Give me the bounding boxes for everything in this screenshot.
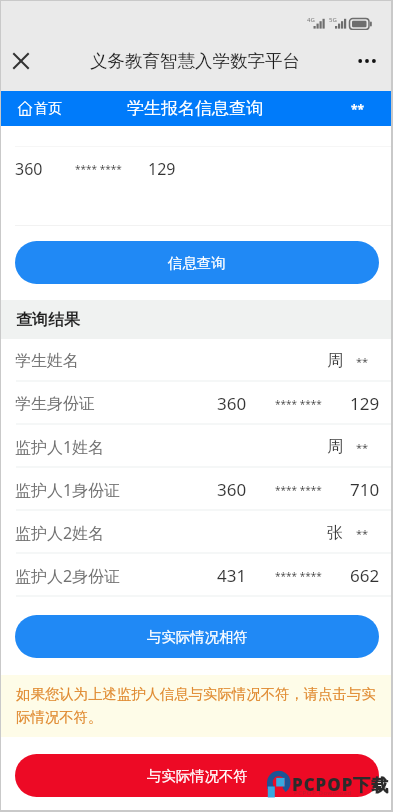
staticText: **: [356, 526, 369, 541]
staticText: **: [356, 440, 369, 455]
staticText: **** ****: [275, 397, 322, 411]
staticText: 与实际情况不符: [147, 767, 248, 785]
staticText: 周: [327, 437, 343, 457]
staticText: **: [356, 354, 369, 369]
button[interactable]: 学生身份证: [1, 382, 391, 425]
staticText: 监护人2身份证: [15, 565, 121, 587]
staticText: 张: [327, 523, 343, 543]
staticText: 义务教育智慧入学数字平台: [90, 50, 300, 72]
staticText: 监护人1身份证: [15, 479, 121, 501]
staticText: 监护人2姓名: [15, 522, 105, 544]
staticText: **** ****: [275, 483, 322, 497]
staticText: **** ****: [75, 162, 122, 176]
button[interactable]: 与实际情况不符: [15, 754, 379, 797]
staticText: **: [351, 101, 365, 117]
staticText: PCPOP Download: [294, 789, 352, 797]
staticText: 662: [350, 564, 380, 587]
staticText: 5G: [329, 16, 337, 24]
staticText: **** ****: [275, 569, 322, 583]
staticText: 与实际情况相符: [147, 628, 248, 646]
staticText: 学生姓名: [15, 351, 79, 371]
staticText: 查询结果: [16, 310, 80, 330]
staticText: 360: [217, 392, 247, 415]
button[interactable]: 监护人2身份证: [1, 554, 391, 597]
button[interactable]: 监护人2姓名: [1, 511, 391, 554]
button[interactable]: 与实际情况相符: [15, 615, 379, 658]
staticText: 431: [217, 564, 247, 587]
button[interactable]: More options: [347, 30, 391, 91]
staticText: 首页: [34, 100, 62, 118]
button[interactable]: Close: [1, 30, 41, 91]
button[interactable]: 信息查询: [15, 241, 379, 284]
staticText: 360: [15, 158, 43, 180]
staticText: 129: [148, 158, 176, 180]
staticText: 如果您认为上述监护人信息与实际情况不符，请点击与实际情况不符。: [16, 685, 387, 726]
staticText: 710: [350, 478, 380, 501]
staticText: 信息查询: [168, 254, 226, 272]
button[interactable]: 监护人1姓名: [1, 425, 391, 468]
staticText: 360: [217, 478, 247, 501]
button[interactable]: 学生姓名: [1, 339, 391, 382]
staticText: 监护人1姓名: [15, 436, 105, 458]
staticText: 129: [350, 392, 380, 415]
staticText: 学生报名信息查询: [127, 98, 263, 119]
staticText: 学生身份证: [15, 394, 95, 414]
button[interactable]: 监护人1身份证: [1, 468, 391, 511]
staticText: PCPOP下载: [292, 773, 390, 796]
button[interactable]: 首页: [18, 91, 62, 126]
staticText: 4G: [307, 16, 315, 24]
staticText: 周: [327, 351, 343, 371]
